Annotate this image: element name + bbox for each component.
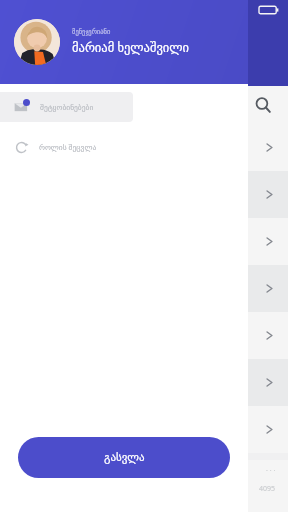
button[interactable]: მენეჯერიანი: [0, 0, 248, 84]
button[interactable]: [0, 124, 288, 171]
staticText: როლის შეცვლა: [39, 142, 97, 152]
button[interactable]: Search: [254, 96, 272, 114]
staticText: მარიამ ხელაშვილი: [72, 39, 190, 56]
button[interactable]: [0, 171, 288, 218]
staticText: გასვლა: [104, 451, 145, 464]
button[interactable]: გასვლა: [18, 437, 230, 478]
button[interactable]: [0, 359, 288, 406]
staticText: 4095: [259, 484, 276, 494]
button[interactable]: შეტყობინებები: [0, 92, 133, 122]
staticText: · · ·: [266, 466, 276, 476]
staticText: მენეჯერიანი: [72, 28, 111, 36]
button[interactable]: [0, 218, 288, 265]
button[interactable]: [0, 312, 288, 359]
button[interactable]: როლის შეცვლა: [0, 132, 248, 162]
button[interactable]: [0, 265, 288, 312]
button[interactable]: [0, 406, 288, 453]
staticText: შეტყობინებები: [40, 103, 94, 112]
